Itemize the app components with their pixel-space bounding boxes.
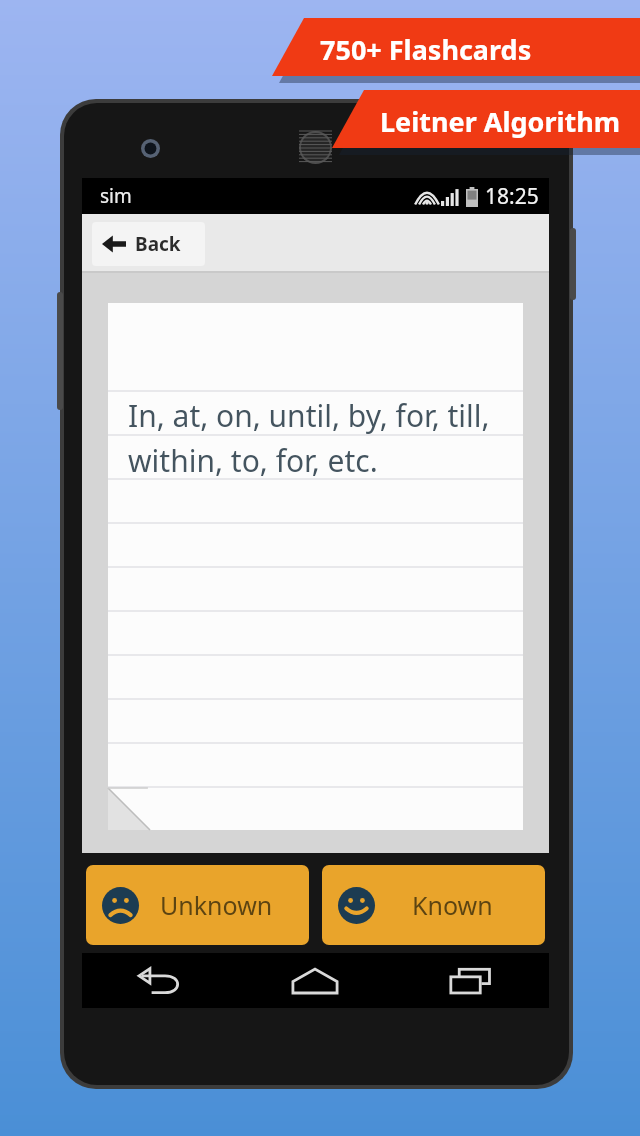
button[interactable]: In, at, on, until, by, for, till, within… [108, 303, 523, 830]
staticText: sim [100, 183, 132, 209]
button[interactable]: Unknown [86, 865, 309, 945]
button[interactable]: Recent apps [393, 953, 549, 1008]
button[interactable]: Back [82, 953, 237, 1008]
staticText: Leitner Algorithm [380, 103, 621, 140]
staticText: Known [412, 888, 493, 922]
button[interactable]: Known [322, 865, 545, 945]
staticText: 18:25 [485, 182, 539, 211]
staticText: Unknown [160, 888, 273, 922]
button[interactable]: Back [92, 222, 205, 266]
staticText: In, at, on, until, by, for, till, within… [128, 395, 490, 480]
staticText: Back [135, 231, 181, 257]
staticText: 750+ Flashcards [320, 31, 532, 68]
button[interactable]: Home [237, 953, 393, 1008]
